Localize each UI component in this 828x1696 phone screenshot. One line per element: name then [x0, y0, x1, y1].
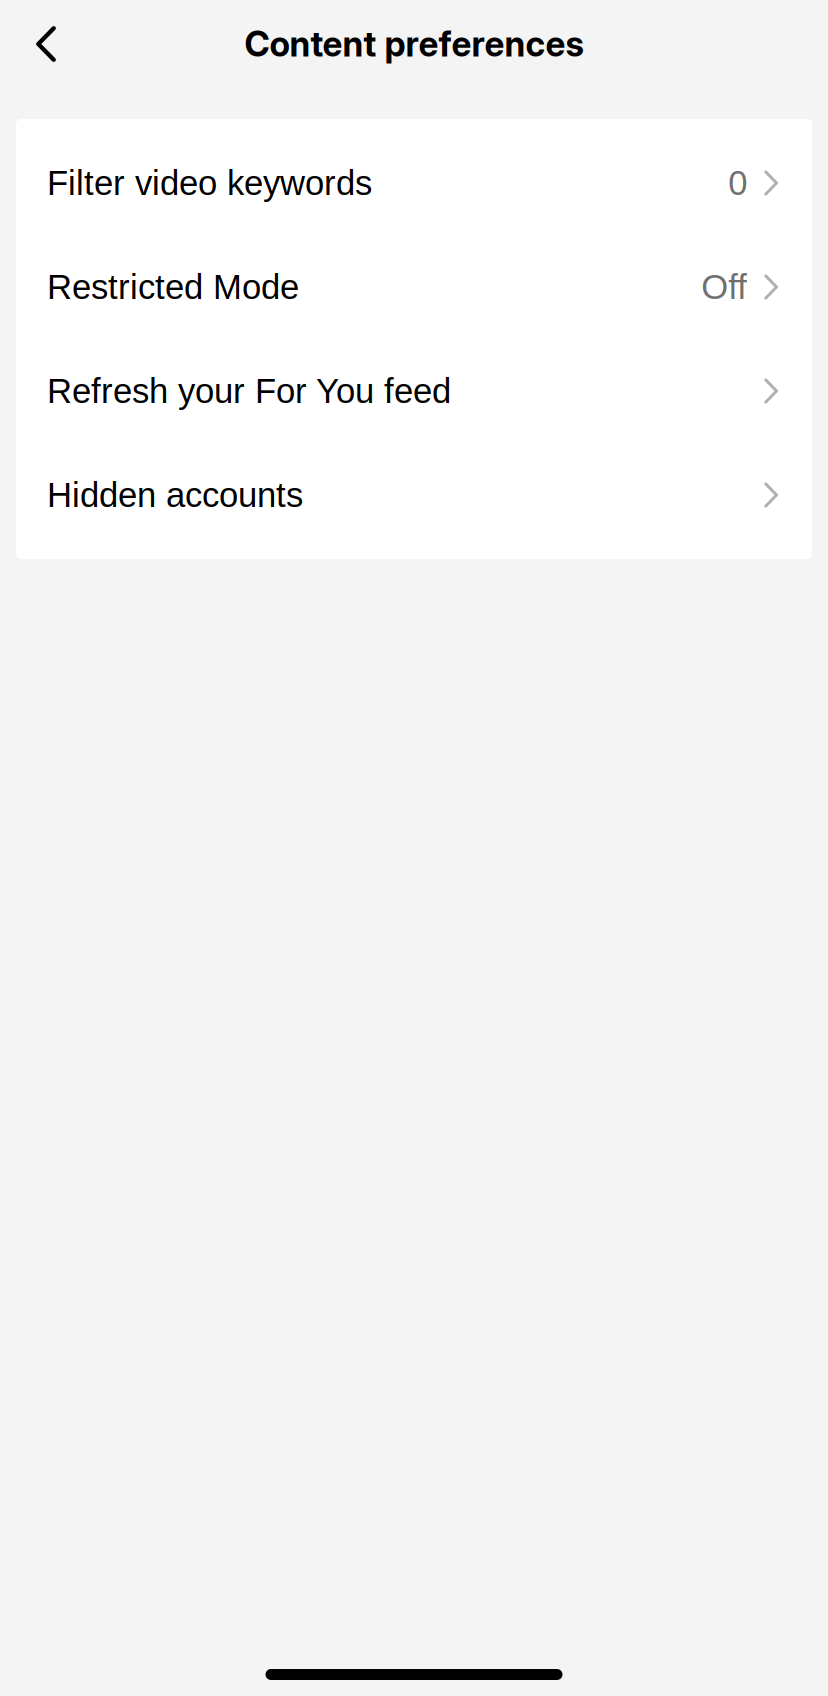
button[interactable]: Refresh your For You feed [16, 339, 812, 443]
staticText: Off [701, 268, 747, 306]
staticText: Content preferences [244, 23, 583, 65]
button[interactable]: Hidden accounts [16, 443, 812, 547]
button[interactable]: Restricted Mode [16, 235, 812, 339]
staticText: 0 [728, 164, 747, 202]
staticText: Hidden accounts [47, 476, 303, 514]
button[interactable]: Filter video keywords [16, 131, 812, 235]
staticText: Filter video keywords [47, 164, 372, 202]
button[interactable]: Back [15, 13, 77, 75]
staticText: Restricted Mode [47, 268, 299, 306]
staticText: Refresh your For You feed [47, 372, 451, 410]
